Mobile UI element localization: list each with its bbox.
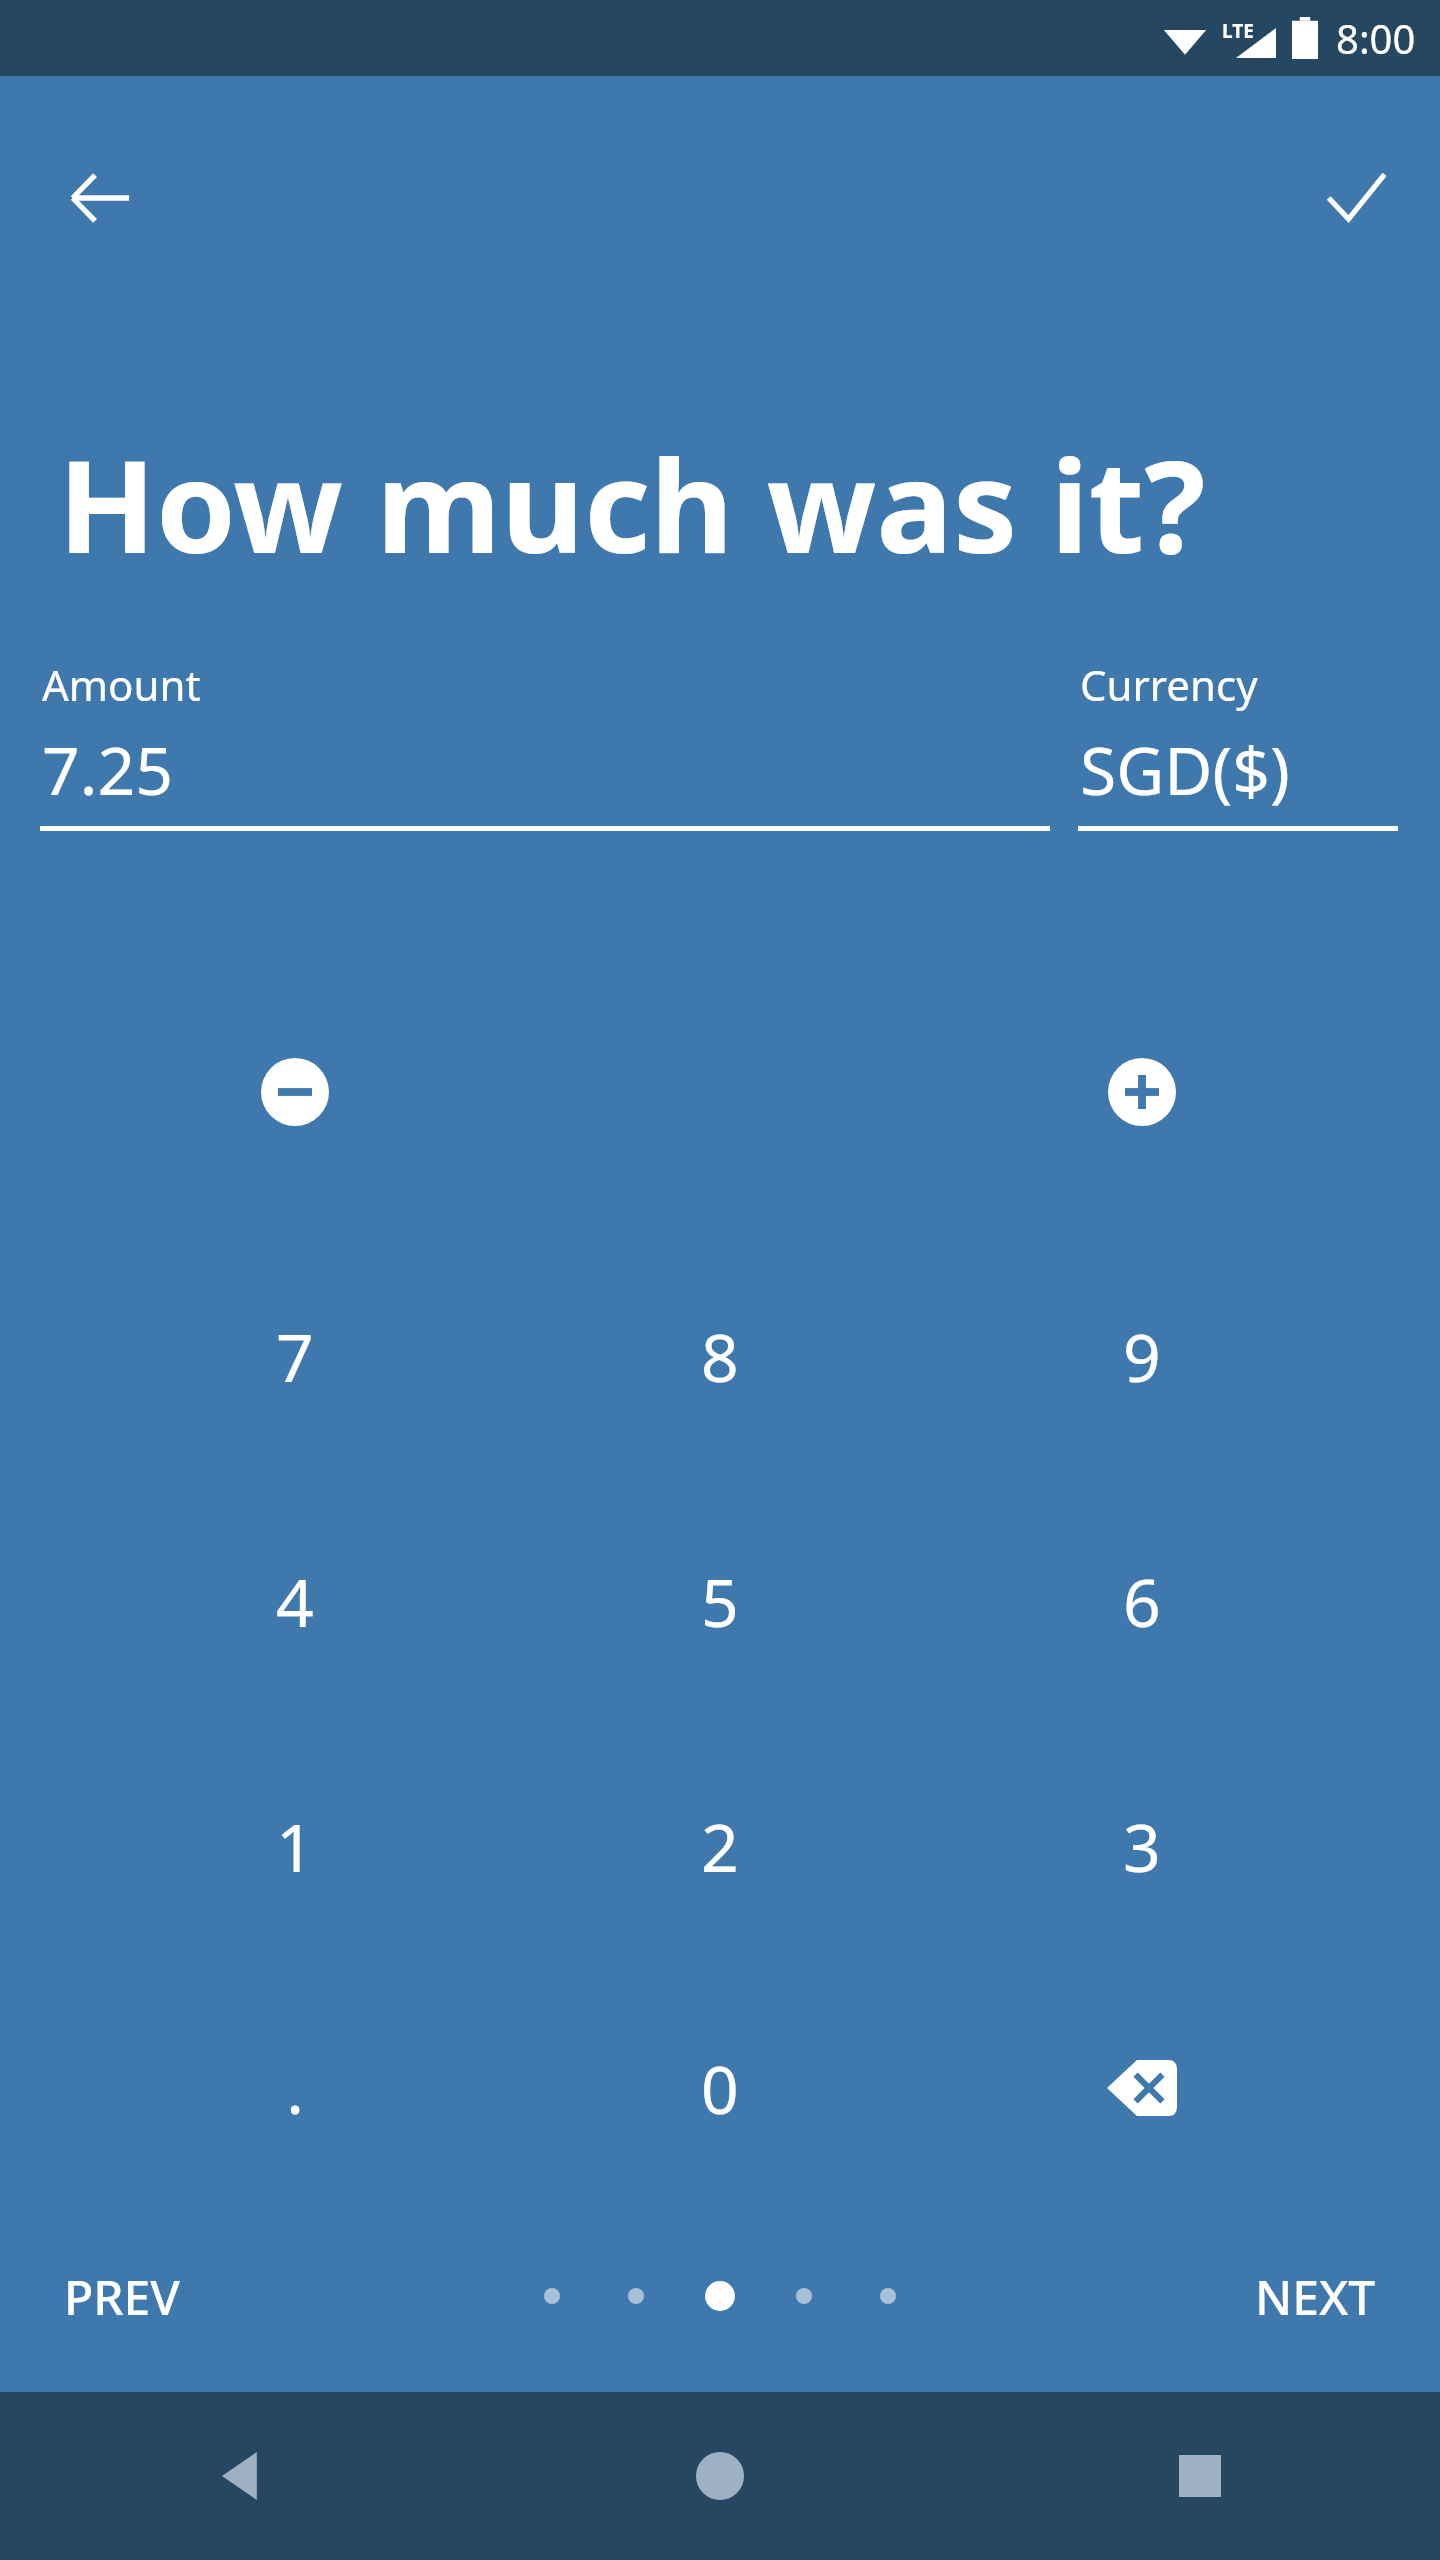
button[interactable]: 7 [195, 1256, 395, 1456]
staticText: How much was it? [58, 416, 1206, 590]
button[interactable]: 0 [620, 1988, 820, 2188]
button[interactable]: Back [192, 2428, 288, 2524]
staticText: 7.25 [42, 724, 173, 814]
button[interactable]: Home [672, 2428, 768, 2524]
staticText: 7 [276, 1311, 314, 1401]
button[interactable]: PREV [64, 2264, 180, 2329]
button[interactable]: Increase amount [1042, 992, 1242, 1192]
staticText: 4 [276, 1556, 314, 1646]
button[interactable]: 3 [1042, 1746, 1242, 1946]
staticText: NEXT [1255, 2264, 1376, 2329]
staticText: 8:00 [1336, 11, 1416, 65]
staticText: 9 [1123, 1311, 1161, 1401]
button[interactable]: Backspace [1042, 1988, 1242, 2188]
staticText: 8 [701, 1311, 739, 1401]
staticText: 0 [701, 2043, 739, 2133]
button[interactable]: Confirm [1296, 138, 1416, 258]
staticText: 2 [701, 1801, 739, 1891]
staticText: SGD($) [1080, 724, 1290, 814]
button[interactable]: 2 [620, 1746, 820, 1946]
button[interactable]: 5 [620, 1501, 820, 1701]
button[interactable]: 9 [1042, 1256, 1242, 1456]
button[interactable]: Navigate up [40, 138, 160, 258]
staticText: Amount [42, 656, 201, 713]
staticText: LTE [1222, 18, 1254, 44]
button[interactable]: 1 [195, 1746, 395, 1946]
button[interactable]: NEXT [1255, 2264, 1376, 2329]
button[interactable]: Decrease amount [195, 992, 395, 1192]
staticText: 1 [276, 1801, 314, 1891]
button[interactable]: Currency [1078, 646, 1398, 836]
button[interactable]: 4 [195, 1501, 395, 1701]
button[interactable]: Recent apps [1152, 2428, 1248, 2524]
staticText: 6 [1123, 1556, 1161, 1646]
staticText: 3 [1123, 1801, 1161, 1891]
staticText: PREV [64, 2264, 180, 2329]
button[interactable]: Amount [40, 646, 1050, 836]
staticText: . [286, 2043, 304, 2133]
staticText: Currency [1080, 656, 1258, 713]
button[interactable]: 6 [1042, 1501, 1242, 1701]
button[interactable]: 8 [620, 1256, 820, 1456]
button[interactable]: . [195, 1988, 395, 2188]
staticText: 5 [701, 1556, 739, 1646]
